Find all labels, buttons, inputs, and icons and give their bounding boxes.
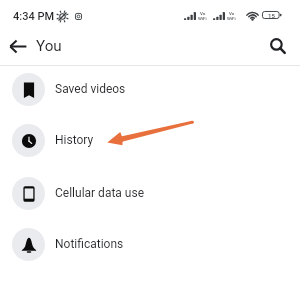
staticText: Vo — [229, 11, 235, 16]
button[interactable]: Notifications — [0, 218, 300, 270]
button[interactable]: Saved videos — [0, 63, 300, 115]
staticText: History — [55, 133, 94, 147]
staticText: Vo — [200, 11, 206, 16]
staticText: Notifications — [55, 237, 124, 251]
button[interactable]: Search — [264, 32, 292, 60]
button[interactable]: Back — [4, 32, 32, 60]
staticText: Saved videos — [55, 82, 126, 96]
staticText: You — [36, 37, 62, 55]
button[interactable]: History — [0, 114, 300, 166]
button[interactable]: Cellular data use — [0, 167, 300, 219]
staticText: Cellular data use — [55, 186, 145, 200]
staticText: WiFi — [198, 16, 207, 21]
staticText: WiFi — [227, 16, 236, 21]
staticText: 15 — [268, 12, 275, 19]
staticText: 4:34 PM — [13, 10, 55, 23]
